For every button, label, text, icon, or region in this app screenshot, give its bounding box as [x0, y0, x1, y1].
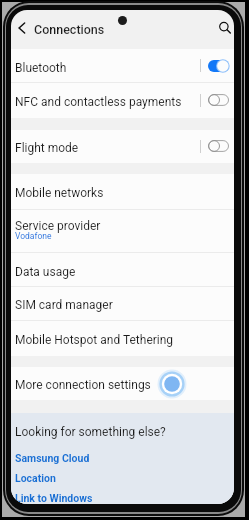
staticText: Mobile Hotspot and Tethering — [15, 333, 174, 347]
button[interactable]: Link to Windows — [15, 492, 93, 504]
staticText: Mobile networks — [15, 186, 104, 200]
button[interactable]: Location — [15, 472, 56, 484]
button[interactable]: Switch off — [208, 93, 229, 107]
button[interactable]: Mobile Hotspot and Tethering — [11, 321, 234, 356]
button[interactable]: Data usage — [11, 253, 234, 287]
staticText: Connections — [34, 22, 105, 37]
staticText: Vodafone — [15, 231, 52, 241]
button[interactable]: Samsung Cloud — [15, 452, 90, 464]
button[interactable]: Service provider — [11, 209, 234, 253]
staticText: SIM card manager — [15, 298, 113, 312]
staticText: NFC and contactless payments — [15, 95, 182, 109]
staticText: Bluetooth — [15, 61, 67, 75]
button[interactable]: Flight mode — [11, 130, 234, 163]
button[interactable]: More connection settings — [11, 367, 234, 400]
button[interactable]: Navigate up — [12, 18, 32, 38]
button[interactable]: Search — [215, 18, 234, 38]
staticText: Flight mode — [15, 141, 79, 155]
button[interactable]: Bluetooth — [11, 49, 234, 83]
staticText: Data usage — [15, 265, 76, 279]
button[interactable]: Mobile networks — [11, 174, 234, 209]
button[interactable]: Switch off — [208, 139, 229, 153]
staticText: Service provider — [15, 219, 101, 233]
staticText: More connection settings — [15, 378, 151, 392]
button[interactable]: SIM card manager — [11, 286, 234, 321]
button[interactable]: NFC and contactless payments — [11, 83, 234, 118]
staticText: Looking for something else? — [15, 425, 166, 439]
button[interactable]: Switch on — [208, 59, 229, 73]
